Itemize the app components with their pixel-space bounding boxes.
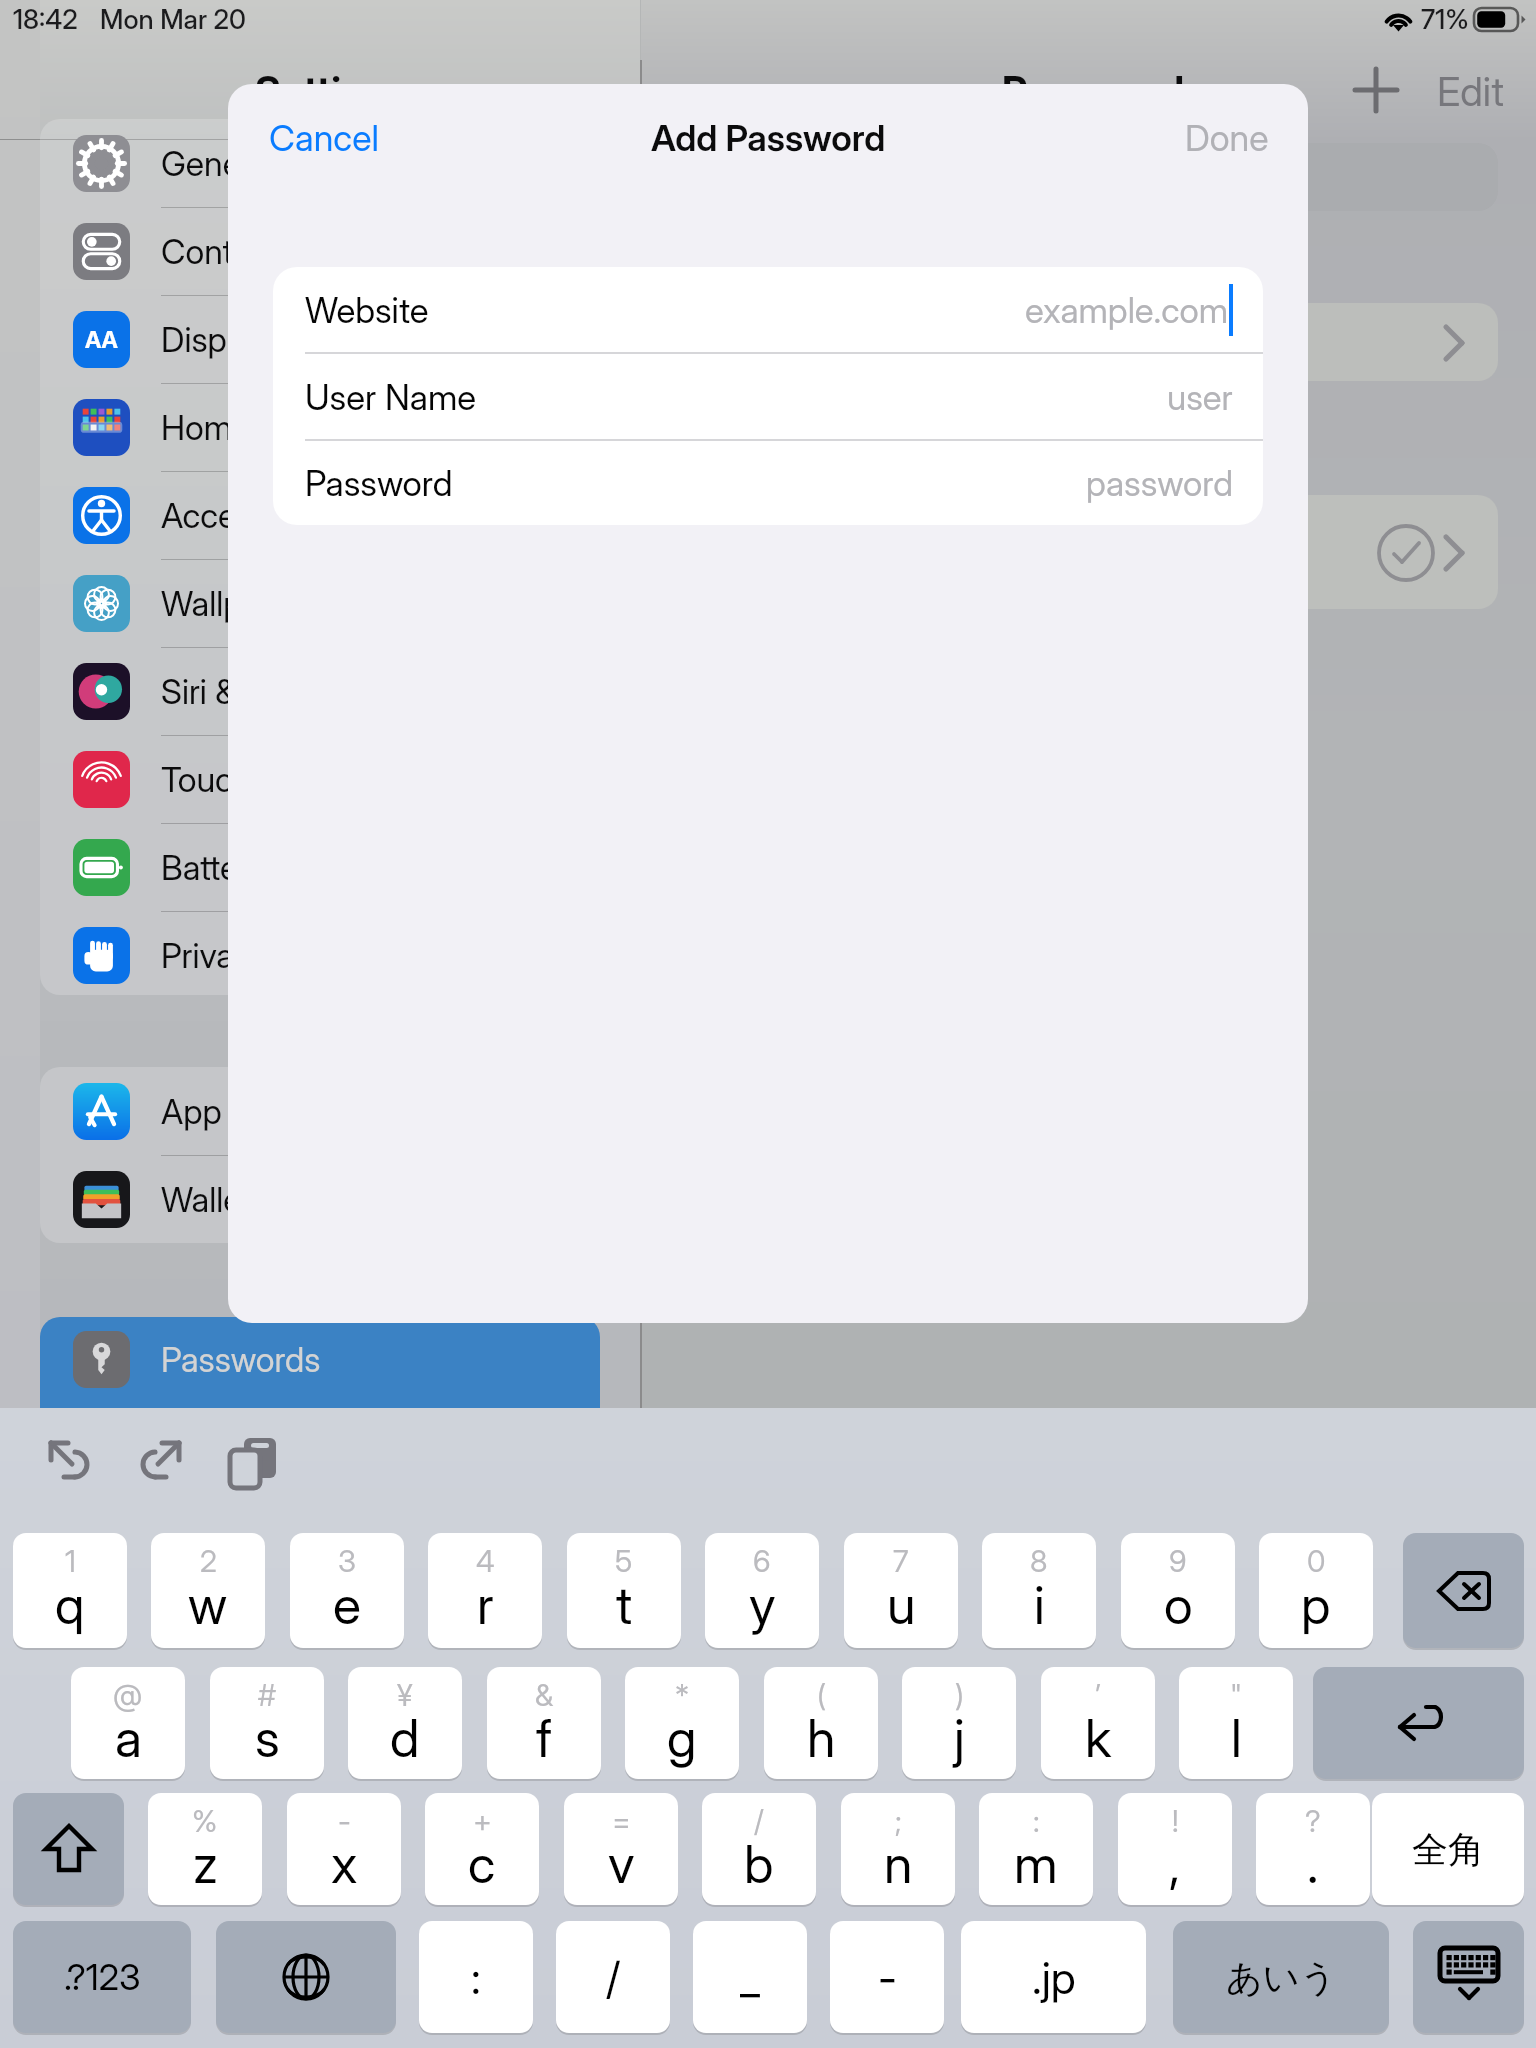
button[interactable]: 0 bbox=[1259, 1533, 1373, 1648]
button[interactable]: AA bbox=[73, 295, 600, 383]
button[interactable]: ( bbox=[764, 1667, 878, 1779]
button[interactable]: # bbox=[210, 1667, 324, 1779]
staticText: : bbox=[471, 1951, 481, 2004]
staticText: Control Center bbox=[161, 231, 379, 272]
button[interactable]: - bbox=[287, 1793, 401, 1905]
button[interactable]: " bbox=[1179, 1667, 1293, 1779]
button[interactable]: Password bbox=[305, 441, 1233, 525]
staticText: p bbox=[1301, 1574, 1331, 1637]
staticText: v bbox=[608, 1833, 635, 1896]
staticText: w bbox=[188, 1574, 228, 1637]
staticText: Accessibility bbox=[161, 495, 346, 536]
staticText: Battery bbox=[161, 847, 267, 888]
button[interactable]: Website bbox=[305, 267, 1233, 352]
button[interactable]: 4 bbox=[428, 1533, 542, 1648]
button[interactable]: & bbox=[487, 1667, 601, 1779]
button[interactable]: Passwords bbox=[40, 1317, 600, 1408]
button[interactable]: 7 bbox=[844, 1533, 958, 1648]
staticText: password bbox=[1086, 462, 1233, 504]
button[interactable]: 5 bbox=[567, 1533, 681, 1648]
button[interactable]: Siri & Search bbox=[73, 647, 600, 735]
staticText: t bbox=[616, 1574, 633, 1637]
staticText: m bbox=[1014, 1833, 1058, 1896]
button[interactable]: ! bbox=[1118, 1793, 1232, 1905]
staticText: 4 bbox=[476, 1543, 495, 1579]
staticText: , bbox=[1169, 1833, 1181, 1896]
staticText: Wallet bbox=[161, 1179, 252, 1220]
button[interactable]: 6 bbox=[705, 1533, 819, 1648]
button[interactable]: Hide keyboard bbox=[1413, 1921, 1524, 2033]
button[interactable]: % bbox=[148, 1793, 262, 1905]
button[interactable]: ) bbox=[902, 1667, 1016, 1779]
staticText: s bbox=[255, 1707, 280, 1770]
staticText: ? bbox=[1305, 1803, 1321, 1839]
button[interactable]: App Store bbox=[73, 1067, 600, 1155]
button[interactable]: User Name bbox=[305, 354, 1233, 439]
button[interactable]: 3 bbox=[290, 1533, 404, 1648]
staticText: Add Password bbox=[651, 116, 886, 160]
staticText: ! bbox=[1172, 1803, 1179, 1839]
staticText: e bbox=[333, 1574, 361, 1637]
staticText: f bbox=[536, 1707, 552, 1770]
staticText: 2 bbox=[200, 1543, 217, 1579]
button[interactable]: Add password bbox=[1354, 68, 1398, 112]
staticText: .?123 bbox=[64, 1955, 141, 1999]
staticText: r bbox=[477, 1574, 494, 1637]
button[interactable]: Done bbox=[1185, 116, 1269, 160]
button[interactable]: Delete bbox=[1403, 1533, 1524, 1648]
button[interactable]: 8 bbox=[982, 1533, 1096, 1648]
button[interactable]: Accessibility bbox=[73, 471, 600, 559]
button[interactable]: Home Screen & Dock bbox=[73, 383, 600, 471]
staticText: Passwords bbox=[161, 1339, 321, 1380]
staticText: 71% bbox=[1421, 3, 1469, 36]
button[interactable]: Shift bbox=[13, 1793, 124, 1905]
button[interactable]: Privacy & Security bbox=[73, 911, 600, 999]
button[interactable]: 全角 bbox=[1372, 1793, 1524, 1905]
staticText: i bbox=[1034, 1574, 1045, 1637]
staticText: Password bbox=[305, 462, 453, 504]
button[interactable]: Undo bbox=[49, 1440, 91, 1486]
staticText: * bbox=[675, 1677, 690, 1713]
button[interactable]: 1 bbox=[13, 1533, 127, 1648]
button[interactable]: Cancel bbox=[269, 116, 379, 160]
button[interactable]: : bbox=[419, 1921, 533, 2033]
button[interactable]: Touch ID & Passcode bbox=[73, 735, 600, 823]
button[interactable]: General bbox=[73, 119, 600, 207]
button[interactable]: - bbox=[830, 1921, 944, 2033]
staticText: user bbox=[1167, 376, 1233, 418]
button[interactable]: _ bbox=[693, 1921, 807, 2033]
button[interactable]: Wallet bbox=[73, 1155, 600, 1243]
button[interactable]: * bbox=[625, 1667, 739, 1779]
button[interactable]: : bbox=[979, 1793, 1093, 1905]
staticText: " bbox=[1230, 1677, 1243, 1713]
button[interactable]: Paste bbox=[228, 1438, 278, 1490]
button[interactable]: = bbox=[564, 1793, 678, 1905]
button[interactable]: 2 bbox=[151, 1533, 265, 1648]
button[interactable]: Redo bbox=[139, 1440, 181, 1486]
staticText: ; bbox=[895, 1803, 902, 1839]
button[interactable]: ; bbox=[841, 1793, 955, 1905]
button[interactable]: .jp bbox=[961, 1921, 1146, 2033]
button[interactable]: Change keyboard bbox=[216, 1921, 396, 2033]
button[interactable]: 9 bbox=[1121, 1533, 1235, 1648]
button[interactable]: / bbox=[556, 1921, 670, 2033]
button[interactable]: Battery bbox=[73, 823, 600, 911]
button[interactable]: Wallpaper bbox=[73, 559, 600, 647]
button[interactable]: + bbox=[425, 1793, 539, 1905]
staticText: Mon Mar 20 bbox=[100, 3, 246, 36]
button[interactable]: @ bbox=[71, 1667, 185, 1779]
staticText: Display & Brightness bbox=[161, 319, 463, 360]
button[interactable]: ’ bbox=[1041, 1667, 1155, 1779]
button[interactable]: Return bbox=[1313, 1667, 1524, 1779]
staticText: / bbox=[754, 1803, 764, 1839]
staticText: = bbox=[612, 1803, 631, 1839]
staticText: Privacy & Security bbox=[161, 935, 429, 976]
button[interactable]: ? bbox=[1256, 1793, 1370, 1905]
button[interactable]: Control Center bbox=[73, 207, 600, 295]
button[interactable]: ¥ bbox=[348, 1667, 462, 1779]
button[interactable]: .?123 bbox=[13, 1921, 191, 2033]
button[interactable]: Edit bbox=[1437, 67, 1504, 115]
staticText: ¥ bbox=[397, 1677, 413, 1713]
button[interactable]: あいう bbox=[1173, 1921, 1389, 2033]
button[interactable]: / bbox=[702, 1793, 816, 1905]
